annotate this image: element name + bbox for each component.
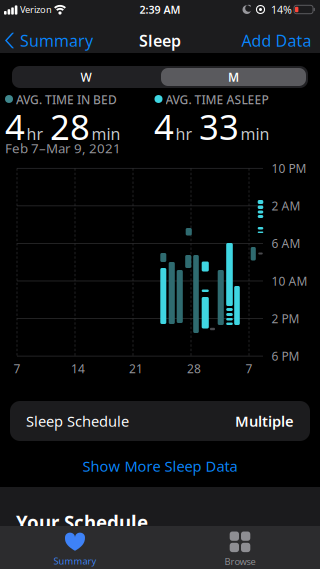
button[interactable]: Sleep Schedule <box>10 401 310 441</box>
staticText: Verizon <box>20 3 52 16</box>
staticText: Multiple <box>235 411 294 431</box>
staticText: AVG. TIME IN BED <box>16 91 117 107</box>
button[interactable]: Summary <box>37 528 113 569</box>
staticText: Sleep <box>139 30 181 51</box>
staticText: 2 AM <box>271 198 300 214</box>
button[interactable]: M <box>161 68 306 86</box>
staticText: 4 <box>154 103 174 149</box>
staticText: min <box>240 123 269 144</box>
staticText: 4 <box>5 103 25 149</box>
staticText: Browse <box>224 555 255 567</box>
staticText: Summary <box>53 555 96 567</box>
staticText: Your Schedule <box>16 510 148 535</box>
button[interactable]: Browse <box>202 528 278 569</box>
staticText: 2 PM <box>271 311 299 326</box>
staticText: Add Data <box>241 30 311 51</box>
staticText: min <box>91 123 120 144</box>
button[interactable]: Summary <box>5 28 125 52</box>
staticText: 28 <box>187 360 201 376</box>
staticText: 6 AM <box>271 235 300 251</box>
staticText: 21 <box>129 360 143 376</box>
staticText: 33 <box>199 103 239 149</box>
staticText: Feb 7–Mar 9, 2021 <box>5 139 121 157</box>
staticText: 10 PM <box>271 160 306 176</box>
staticText: 2:39 AM <box>139 2 180 17</box>
staticText: 6 PM <box>271 348 299 364</box>
button[interactable]: Add Data <box>231 30 311 50</box>
staticText: 14 <box>71 360 85 376</box>
staticText: Summary <box>20 30 93 51</box>
staticText: 7 <box>13 360 20 376</box>
staticText: M <box>228 69 239 85</box>
staticText: AVG. TIME ASLEEP <box>165 91 268 107</box>
staticText: 7 <box>245 360 252 376</box>
staticText: 28 <box>50 103 90 149</box>
staticText: W <box>80 69 91 85</box>
staticText: 14% <box>271 2 292 17</box>
button[interactable]: W <box>14 66 158 88</box>
staticText: 10 AM <box>271 273 307 289</box>
staticText: hr <box>26 123 43 144</box>
staticText: Show More Sleep Data <box>82 456 237 476</box>
button[interactable]: Show More Sleep Data <box>82 456 237 476</box>
staticText: Sleep Schedule <box>26 411 129 431</box>
staticText: hr <box>175 123 192 144</box>
